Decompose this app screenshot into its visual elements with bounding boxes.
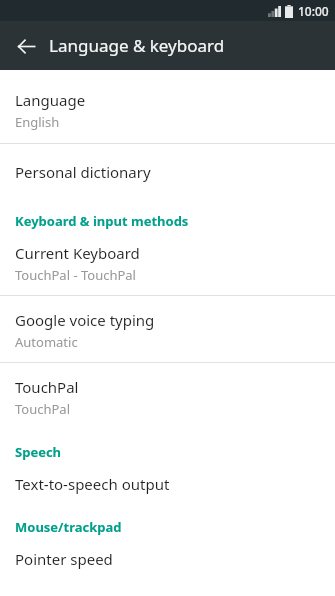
staticText: English (15, 113, 60, 131)
staticText: TouchPal (15, 400, 71, 418)
staticText: TouchPal (15, 377, 79, 397)
staticText: Google voice typing (15, 310, 155, 330)
button[interactable]: Pointer speed (0, 540, 335, 583)
staticText: 10:00 (298, 3, 329, 19)
staticText: Personal dictionary (15, 162, 151, 182)
staticText: Language (15, 90, 86, 110)
staticText: Language & keyboard (49, 34, 225, 57)
button[interactable]: Text-to-speech output (0, 465, 335, 504)
button[interactable]: Language (0, 80, 335, 143)
button[interactable]: Current Keyboard (0, 234, 335, 295)
button[interactable]: TouchPal (0, 363, 335, 429)
staticText: Text-to-speech output (15, 474, 170, 494)
button[interactable]: Google voice typing (0, 296, 335, 362)
staticText: TouchPal - TouchPal (15, 266, 136, 284)
staticText: Mouse/trackpad (15, 518, 122, 536)
staticText: Keyboard & input methods (15, 212, 189, 230)
staticText: Current Keyboard (15, 243, 140, 263)
staticText: Automatic (15, 333, 78, 351)
button[interactable]: Personal dictionary (0, 144, 335, 198)
staticText: Speech (15, 443, 62, 461)
button[interactable]: Back (8, 28, 44, 64)
staticText: Pointer speed (15, 549, 113, 569)
